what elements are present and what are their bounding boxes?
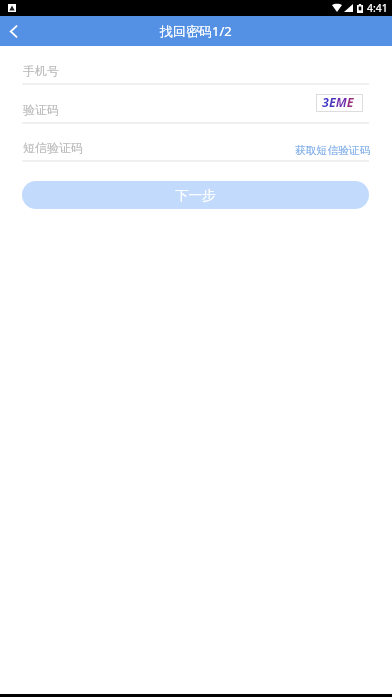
staticText: 手机号 — [23, 63, 59, 78]
button[interactable]: Refresh captcha — [316, 94, 363, 112]
staticText: 找回密码1/2 — [160, 22, 232, 40]
button[interactable]: 短信验证码 — [22, 131, 369, 160]
staticText: 3EME — [322, 94, 354, 111]
staticText: 短信验证码 — [23, 140, 83, 155]
staticText: 获取短信验证码 — [295, 144, 371, 158]
button[interactable]: Back — [0, 16, 30, 46]
staticText: 验证码 — [23, 102, 59, 117]
button[interactable]: 获取短信验证码 — [295, 144, 371, 158]
button[interactable]: 下一步 — [22, 181, 369, 209]
staticText: 4:41 — [367, 1, 388, 15]
button[interactable]: 手机号 — [22, 54, 369, 83]
button[interactable]: 验证码 — [22, 93, 369, 122]
staticText: 下一步 — [175, 187, 216, 204]
